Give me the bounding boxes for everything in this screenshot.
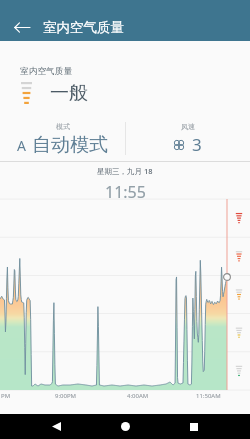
staticText: 11:55 — [105, 181, 146, 203]
staticText: 3 — [192, 133, 202, 156]
button[interactable]: 风速 — [174, 122, 202, 156]
staticText: 室内空气质量 — [20, 66, 73, 77]
staticText: 模式 — [56, 122, 70, 131]
staticText: 室内空气质量 — [43, 19, 124, 36]
staticText: 一般 — [50, 81, 88, 105]
button[interactable]: Home — [113, 414, 138, 439]
staticText: A — [17, 136, 26, 155]
button[interactable]: Recents — [181, 414, 206, 439]
staticText: 星期三，九月 18 — [97, 166, 153, 176]
staticText: PM — [1, 392, 11, 400]
staticText: 9:00PM — [55, 392, 76, 400]
staticText: 4:00AM — [127, 392, 149, 400]
button[interactable]: Back — [10, 14, 33, 41]
staticText: 自动模式 — [32, 133, 108, 157]
staticText: 11:50AM — [196, 392, 221, 400]
button[interactable]: Back — [44, 414, 69, 439]
button[interactable]: 模式 — [17, 122, 108, 157]
staticText: 风速 — [181, 122, 195, 131]
